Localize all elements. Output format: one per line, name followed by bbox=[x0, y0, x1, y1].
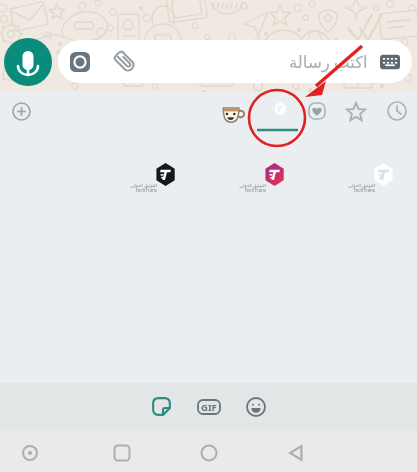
button[interactable]: Stickers bbox=[152, 397, 171, 416]
button[interactable]: Favourites bbox=[308, 102, 326, 120]
button[interactable]: TechTrans sticker bbox=[140, 160, 192, 200]
button[interactable]: Starred bbox=[346, 102, 366, 122]
button[interactable]: Screenshot bbox=[21, 444, 39, 462]
button[interactable]: Voice message bbox=[4, 38, 52, 86]
button[interactable]: TechTrans sticker pack bbox=[256, 94, 299, 134]
staticText: التوثيق الدولي TechTrans bbox=[236, 182, 266, 194]
button[interactable]: Add sticker pack bbox=[12, 102, 31, 121]
button[interactable]: Keyboard bbox=[380, 52, 400, 72]
button[interactable]: Recents bbox=[387, 101, 407, 121]
button[interactable]: Camera bbox=[70, 52, 90, 72]
button[interactable]: GIF bbox=[197, 399, 221, 415]
button[interactable]: TechTrans sticker bbox=[249, 160, 301, 200]
staticText: التوثيق الدولي TechTrans bbox=[345, 182, 375, 194]
button[interactable]: TechTrans sticker bbox=[358, 160, 410, 200]
button[interactable]: Attach bbox=[113, 50, 137, 74]
staticText: اكتب رسالة bbox=[289, 50, 368, 72]
button[interactable]: Recent apps bbox=[113, 444, 131, 462]
staticText: GIF bbox=[201, 401, 217, 414]
staticText: التوثيق الدولي TechTrans bbox=[127, 182, 157, 194]
button[interactable]: Emoji bbox=[246, 397, 266, 417]
button[interactable]: Back bbox=[287, 444, 305, 462]
button[interactable]: Recent stickers bbox=[221, 102, 244, 125]
button[interactable]: Home bbox=[200, 444, 218, 462]
